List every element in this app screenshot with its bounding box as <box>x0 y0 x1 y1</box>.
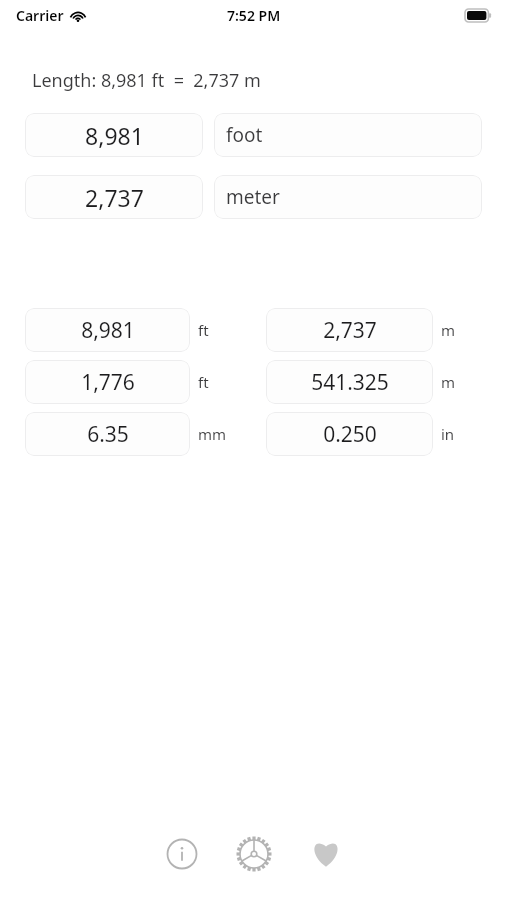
staticText: 8,981 <box>85 120 144 151</box>
staticText: Length: 8,981 ft = 2,737 m <box>32 68 261 93</box>
staticText: 7:52 PM <box>227 6 281 25</box>
staticText: Carrier <box>16 6 64 25</box>
staticText: 2,737 <box>85 182 144 213</box>
staticText: ft <box>198 320 209 340</box>
button[interactable]: 1,776 <box>25 360 190 404</box>
staticText: m <box>441 372 456 392</box>
button[interactable]: 541.325 <box>266 360 433 404</box>
staticText: 0.250 <box>323 420 377 449</box>
staticText: 8,981 <box>81 316 135 345</box>
staticText: 541.325 <box>311 368 389 397</box>
button[interactable]: 2,737 <box>25 175 203 219</box>
button[interactable]: meter <box>214 175 482 219</box>
staticText: 1,776 <box>81 368 135 397</box>
button[interactable]: 8,981 <box>25 113 203 157</box>
button[interactable]: Favorites <box>298 826 354 882</box>
staticText: foot <box>226 122 263 148</box>
staticText: meter <box>226 184 280 210</box>
button[interactable]: 6.35 <box>25 412 190 456</box>
button[interactable]: 2,737 <box>266 308 433 352</box>
button[interactable]: foot <box>214 113 482 157</box>
staticText: 6.35 <box>87 420 129 449</box>
staticText: m <box>441 320 456 340</box>
staticText: mm <box>198 424 227 444</box>
staticText: 2,737 <box>323 316 377 345</box>
staticText: ft <box>198 372 209 392</box>
button[interactable]: Info <box>154 826 210 882</box>
staticText: in <box>441 424 455 444</box>
button[interactable]: Settings <box>226 826 282 882</box>
button[interactable]: 0.250 <box>266 412 433 456</box>
button[interactable]: 8,981 <box>25 308 190 352</box>
